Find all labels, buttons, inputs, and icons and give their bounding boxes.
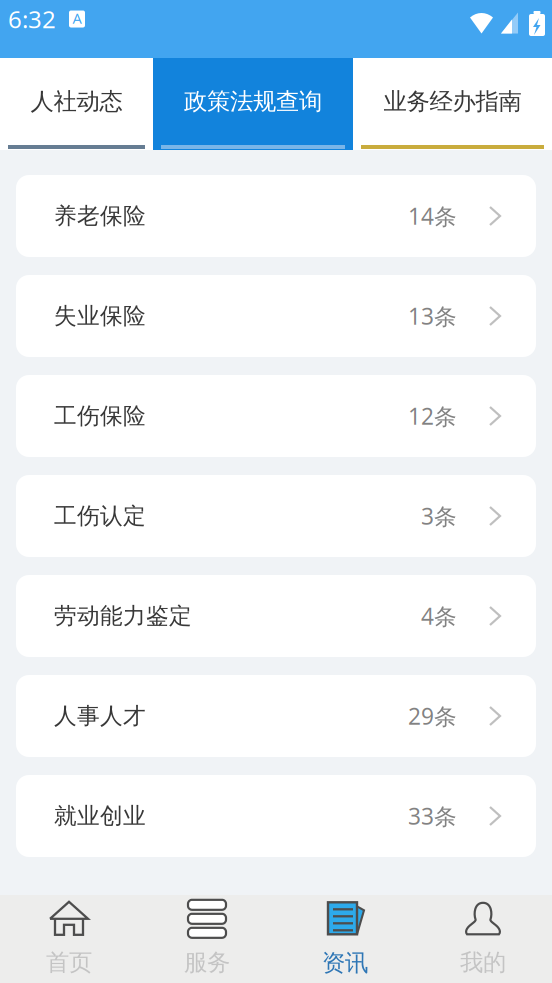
staticText: 劳动能力鉴定 [54,602,192,630]
button[interactable]: 劳动能力鉴定 [16,575,536,657]
button[interactable]: 资讯 [276,895,414,983]
button[interactable]: 业务经办指南 [353,58,552,150]
staticText: A [72,8,81,28]
staticText: 失业保险 [54,302,146,330]
button[interactable]: 失业保险 [16,275,536,357]
staticText: 人社动态 [30,87,122,116]
button[interactable]: 我的 [414,895,552,983]
staticText: 12条 [408,401,457,431]
staticText: 29条 [408,701,457,731]
button[interactable]: 工伤保险 [16,375,536,457]
staticText: 首页 [46,948,92,977]
button[interactable]: 首页 [0,895,138,983]
staticText: 工伤认定 [54,502,146,530]
button[interactable]: 养老保险 [16,175,536,257]
button[interactable]: 就业创业 [16,775,536,857]
staticText: 14条 [408,201,457,231]
button[interactable]: 服务 [138,895,276,983]
button[interactable]: 人事人才 [16,675,536,757]
staticText: 人事人才 [54,702,146,730]
staticText: 业务经办指南 [383,87,521,116]
staticText: 养老保险 [54,202,146,230]
staticText: 就业创业 [54,802,146,830]
staticText: 6:32 [8,3,56,35]
staticText: 资讯 [322,948,368,978]
button[interactable]: 工伤认定 [16,475,536,557]
staticText: 13条 [408,301,457,331]
staticText: 4条 [421,601,457,631]
staticText: 工伤保险 [54,402,146,430]
staticText: 服务 [184,948,230,977]
button[interactable]: 人社动态 [0,58,153,150]
staticText: 我的 [460,948,506,977]
staticText: 3条 [421,501,457,531]
staticText: 政策法规查询 [184,87,322,116]
staticText: 33条 [408,801,457,831]
button[interactable]: 政策法规查询 [153,58,353,150]
